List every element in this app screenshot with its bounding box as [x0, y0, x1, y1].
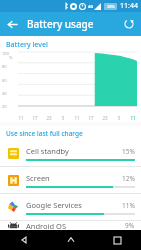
staticText: 17 — [28, 115, 42, 121]
staticText: 15% — [122, 147, 135, 156]
staticText: 17 — [84, 115, 98, 121]
staticText: 12% — [122, 174, 135, 183]
staticText: Use since last full charge — [6, 129, 83, 138]
button[interactable]: Back — [0, 230, 47, 250]
staticText: 5 — [56, 115, 70, 121]
staticText: 11 — [126, 115, 140, 121]
staticText: 4G — [88, 4, 94, 9]
staticText: Battery usage — [27, 17, 94, 31]
button[interactable]: Android OS — [0, 221, 141, 230]
staticText: 60 — [2, 78, 7, 83]
staticText: 9% — [125, 221, 135, 230]
button[interactable]: Back — [0, 12, 24, 36]
staticText: 40 — [2, 91, 7, 96]
button[interactable]: Recent apps — [94, 230, 141, 250]
staticText: 28% — [107, 4, 115, 9]
button[interactable]: Home — [47, 230, 94, 250]
staticText: 11 — [70, 115, 84, 121]
button[interactable]: Cell standby — [0, 140, 141, 166]
staticText: Android OS — [26, 221, 125, 230]
staticText: 5 — [112, 115, 126, 121]
button[interactable]: Refresh — [117, 12, 141, 36]
staticText: Battery level — [6, 40, 48, 50]
button[interactable]: Google Services — [0, 194, 141, 220]
staticText: 23 — [42, 115, 56, 121]
staticText: 11 — [14, 115, 28, 121]
staticText: % — [9, 55, 13, 60]
button[interactable]: Screen — [0, 167, 141, 193]
staticText: 23 — [98, 115, 112, 121]
staticText: 80 — [2, 64, 7, 69]
staticText: Screen — [26, 173, 122, 183]
staticText: Google Services — [26, 200, 122, 210]
staticText: 20 — [2, 104, 7, 109]
staticText: Cell standby — [26, 146, 122, 156]
staticText: 11:44 — [120, 1, 138, 11]
staticText: 100 — [2, 51, 9, 56]
staticText: 11% — [122, 201, 135, 210]
